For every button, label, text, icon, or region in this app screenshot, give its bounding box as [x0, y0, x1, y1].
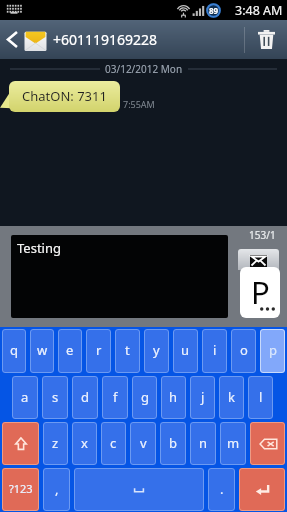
button[interactable]: c: [101, 422, 126, 465]
staticText: c: [110, 434, 117, 452]
staticText: Testing: [17, 239, 61, 257]
staticText: h: [169, 388, 178, 406]
staticText: k: [228, 388, 235, 406]
button[interactable]: Message type: [238, 249, 279, 270]
button[interactable]: Enter: [239, 468, 285, 511]
staticText: 3:48 AM: [235, 2, 283, 19]
button[interactable]: x: [72, 422, 97, 465]
button[interactable]: Send: [240, 267, 280, 318]
button[interactable]: l: [248, 376, 273, 419]
staticText: 03/12/2012 Mon: [105, 62, 183, 76]
button[interactable]: k: [219, 376, 244, 419]
staticText: f: [113, 388, 118, 406]
staticText: o: [240, 341, 248, 359]
staticText: q: [10, 341, 18, 359]
staticText: +601119169228: [53, 30, 158, 49]
button[interactable]: h: [161, 376, 186, 419]
staticText: 89: [209, 5, 219, 16]
button[interactable]: f: [102, 376, 128, 419]
staticText: n: [199, 434, 208, 452]
button[interactable]: ?123: [2, 468, 39, 511]
staticText: ChatON: 7311: [22, 87, 107, 105]
button[interactable]: p: [260, 329, 285, 373]
staticText: y: [153, 341, 160, 359]
staticText: s: [52, 388, 59, 406]
staticText: x: [81, 434, 88, 452]
button[interactable]: d: [72, 376, 98, 419]
staticText: 153/1: [249, 228, 276, 242]
button[interactable]: o: [231, 329, 256, 373]
button[interactable]: r: [86, 329, 111, 373]
staticText: g: [141, 388, 149, 406]
staticText: j: [201, 388, 205, 406]
button[interactable]: Back: [0, 20, 24, 59]
staticText: p: [269, 341, 277, 359]
button[interactable]: q: [2, 329, 26, 373]
staticText: r: [96, 341, 102, 359]
button[interactable]: e: [58, 329, 82, 373]
button[interactable]: n: [190, 422, 216, 465]
staticText: .: [220, 480, 224, 498]
button[interactable]: ,: [43, 468, 70, 511]
button[interactable]: s: [42, 376, 68, 419]
button[interactable]: y: [144, 329, 169, 373]
staticText: u: [181, 341, 190, 359]
button[interactable]: u: [173, 329, 198, 373]
staticText: P: [251, 271, 270, 313]
staticText: e: [66, 341, 74, 359]
staticText: b: [169, 434, 177, 452]
staticText: z: [52, 434, 59, 452]
staticText: 7:55AM: [123, 98, 155, 110]
staticText: i: [213, 341, 217, 359]
button[interactable]: j: [190, 376, 215, 419]
button[interactable]: Testing: [11, 235, 228, 318]
button[interactable]: Shift: [2, 422, 39, 465]
button[interactable]: Delete: [245, 20, 287, 59]
button[interactable]: Space: [74, 468, 204, 511]
staticText: m: [227, 434, 240, 452]
button[interactable]: i: [202, 329, 227, 373]
staticText: ,: [55, 480, 59, 498]
staticText: v: [140, 434, 147, 452]
staticText: d: [81, 388, 89, 406]
button[interactable]: a: [12, 376, 38, 419]
button[interactable]: v: [130, 422, 156, 465]
staticText: w: [37, 341, 48, 359]
button[interactable]: z: [43, 422, 68, 465]
staticText: t: [125, 341, 130, 359]
staticText: a: [21, 388, 29, 406]
button[interactable]: b: [160, 422, 186, 465]
staticText: ?123: [9, 481, 33, 496]
button[interactable]: t: [115, 329, 140, 373]
button[interactable]: g: [132, 376, 157, 419]
button[interactable]: Backspace: [250, 422, 285, 465]
button[interactable]: m: [220, 422, 246, 465]
staticText: l: [259, 388, 263, 406]
button[interactable]: .: [208, 468, 235, 511]
button[interactable]: w: [30, 329, 54, 373]
